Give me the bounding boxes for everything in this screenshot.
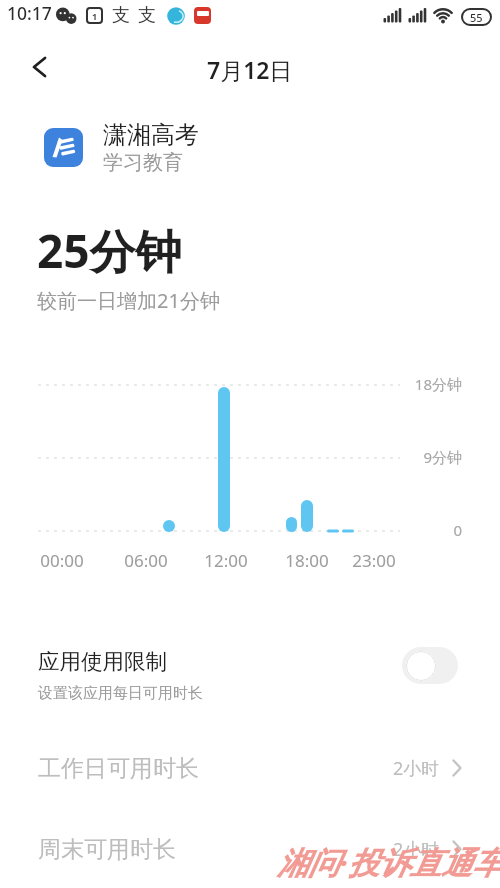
staticText: 支 [138,4,156,27]
staticText: 2小时 [393,837,440,862]
staticText: 工作日可用时长 [38,754,199,783]
button[interactable]: 周末可用时长 [0,821,500,877]
staticText: 湘问·投诉直通车 [277,841,500,883]
staticText: 1 [92,10,98,22]
staticText: 9分钟 [372,447,462,467]
staticText: 18:00 [272,549,342,572]
button[interactable] [29,55,53,79]
staticText: 潇湘高考 [103,120,199,150]
staticText: 学习教育 [103,150,183,175]
staticText: 设置该应用每日可用时长 [38,684,203,703]
staticText: 00:00 [27,549,97,572]
staticText: 18分钟 [372,374,462,394]
staticText: 周末可用时长 [38,835,176,864]
staticText: 7月12日 [207,54,293,85]
staticText: 12:00 [191,549,261,572]
staticText: 应用使用限制 [38,648,167,675]
staticText: 较前一日增加21分钟 [37,287,220,314]
staticText: 55 [470,10,483,25]
staticText: 0 [372,520,462,540]
staticText: 23:00 [339,549,409,572]
staticText: 25分钟 [37,219,182,282]
staticText: 06:00 [111,549,181,572]
staticText: 支 [112,4,130,27]
button[interactable] [402,647,458,684]
button[interactable]: 工作日可用时长 [0,740,500,796]
staticText: 10:17 [7,1,52,25]
staticText: 2小时 [393,756,440,781]
